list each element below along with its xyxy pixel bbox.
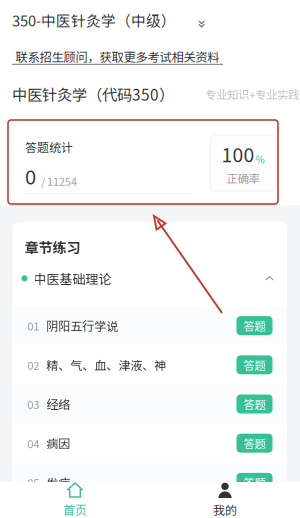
staticText: 中医针灸学（代码350） [12,83,174,105]
staticText: 答题统计 [25,138,73,155]
staticText: 精、气、血、津液、神 [46,356,166,373]
button[interactable]: 04 [12,424,287,463]
staticText: / 11254 [41,173,77,189]
staticText: 02 [27,357,39,373]
staticText: 正确率 [226,170,259,186]
staticText: 04 [27,435,39,451]
staticText: 350-中医针灸学（中级） [12,9,176,31]
staticText: 专业知识+专业实践 [205,86,299,102]
staticText: % [255,152,264,166]
staticText: 01 [27,317,39,334]
staticText: 我的 [213,501,237,518]
staticText: 05 [27,474,39,491]
staticText: 答题 [243,396,265,412]
button[interactable]: 我的 [150,482,300,518]
button[interactable]: 01 [12,306,287,345]
staticText: 中医基础理论 [33,269,111,288]
staticText: 答题 [243,357,265,373]
staticText: 联系招生顾问，获取更多考试相关资料 [15,47,219,65]
button[interactable]: 02 [12,345,287,384]
staticText: 答题 [243,317,265,334]
staticText: 100 [221,140,254,168]
staticText: 病因 [46,434,70,452]
button[interactable]: 中医基础理论 [12,257,287,306]
staticText: 阴阳五行学说 [46,317,118,334]
staticText: 03 [27,396,39,412]
button[interactable]: 联系招生顾问，获取更多考试相关资料 [0,40,300,75]
staticText: 经络 [46,395,70,413]
button[interactable]: 03 [12,384,287,424]
staticText: 答题 [243,474,265,491]
staticText: 答题 [243,435,265,451]
staticText: 章节练习 [24,237,80,257]
button[interactable]: 350-中医针灸学（中级） [0,0,300,40]
staticText: 发病 [46,474,70,491]
staticText: 0 [25,161,36,190]
staticText: 首页 [63,501,87,518]
button[interactable]: 05 [12,463,287,502]
button[interactable]: 首页 [0,482,150,518]
